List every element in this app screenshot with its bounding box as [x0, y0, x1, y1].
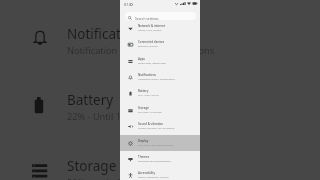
button[interactable]: Storage — [120, 102, 200, 118]
staticText: Network & internet — [138, 24, 166, 28]
staticText: Sound & vibration — [138, 122, 164, 126]
staticText: Search settings — [135, 16, 159, 20]
button[interactable]: Notifications — [0, 18, 320, 60]
staticText: 50% used - 64 GB free — [67, 176, 162, 180]
button[interactable]: Battery — [0, 84, 320, 126]
staticText: Battery — [67, 91, 114, 109]
button[interactable]: Battery — [120, 85, 200, 101]
staticText: Apps — [138, 57, 145, 61]
button[interactable]: Storage — [0, 150, 320, 180]
button[interactable]: Sound & vibration — [120, 118, 200, 134]
button[interactable]: Themes — [120, 151, 200, 167]
staticText: Wallpaper and personalization — [138, 160, 171, 163]
staticText: Connected devices — [138, 40, 165, 44]
staticText: Notifications — [138, 73, 156, 77]
staticText: Mobile, Wi-Fi, hotspot — [138, 29, 162, 32]
button[interactable]: Accessibility — [120, 167, 200, 180]
staticText: 50% used - 64 GB free — [138, 111, 162, 114]
button[interactable]: Network & internet — [120, 20, 200, 36]
staticText: Volume, vibration, Do Not Disturb — [138, 127, 175, 130]
staticText: Recent apps, default apps — [138, 62, 166, 65]
staticText: Battery — [138, 89, 149, 93]
staticText: 8:14 — [124, 2, 131, 7]
staticText: Accessibility — [138, 171, 156, 175]
staticText: Dark theme, font size, brightness — [138, 144, 174, 147]
button[interactable]: Display — [120, 135, 200, 151]
staticText: 22% - Until 1:30 PM — [67, 110, 151, 123]
button[interactable]: Apps — [120, 53, 200, 69]
staticText: Display — [138, 139, 149, 143]
staticText: Storage — [67, 157, 117, 175]
button[interactable]: Search settings — [125, 12, 196, 20]
button[interactable]: Connected devices — [120, 36, 200, 52]
button[interactable]: Notifications — [120, 69, 200, 85]
staticText: Bluetooth, pairing — [138, 45, 158, 48]
staticText: Themes — [138, 155, 150, 159]
staticText: Notification history, conversations — [67, 44, 215, 57]
staticText: Display, interaction, controls — [138, 176, 169, 179]
staticText: Notification history, conversations — [138, 78, 175, 81]
staticText: Storage — [138, 106, 149, 110]
staticText: Notifications — [67, 25, 148, 43]
staticText: 22% - Until 1:30 PM — [138, 94, 159, 97]
